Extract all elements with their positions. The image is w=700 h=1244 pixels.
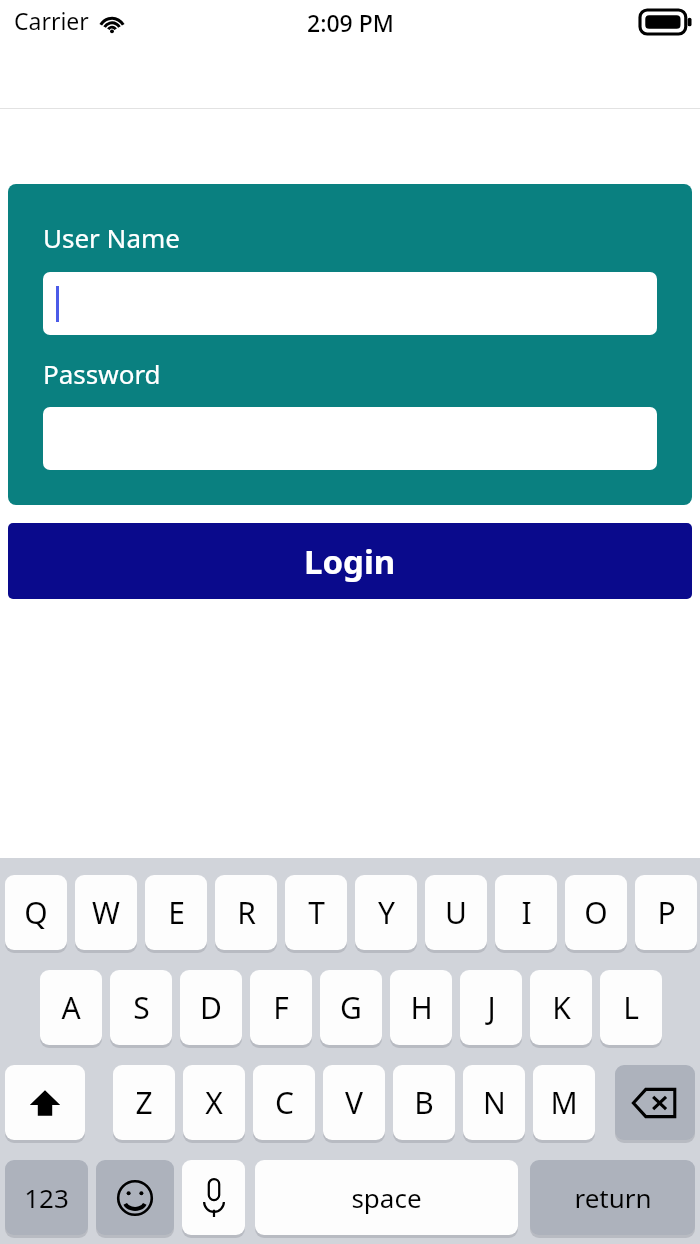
button[interactable]: H — [390, 970, 452, 1045]
button[interactable]: Shift — [5, 1065, 85, 1140]
staticText: J — [487, 987, 496, 1028]
button[interactable]: U — [425, 875, 487, 950]
staticText: Z — [135, 1082, 153, 1123]
staticText: X — [205, 1082, 223, 1123]
staticText: R — [237, 892, 256, 933]
staticText: Q — [24, 892, 48, 933]
button[interactable]: J — [460, 970, 522, 1045]
button[interactable]: O — [565, 875, 627, 950]
staticText: U — [445, 892, 467, 933]
staticText: S — [133, 987, 150, 1028]
staticText: P — [657, 892, 676, 933]
staticText: L — [623, 987, 639, 1028]
staticText: K — [552, 987, 571, 1028]
staticText: 2:09 PM — [307, 7, 394, 38]
button[interactable] — [43, 272, 657, 335]
staticText: C — [275, 1082, 294, 1123]
button[interactable]: R — [215, 875, 277, 950]
button[interactable]: A — [40, 970, 102, 1045]
staticText: A — [61, 987, 81, 1028]
button[interactable]: L — [600, 970, 662, 1045]
staticText: F — [273, 987, 289, 1028]
button[interactable]: G — [320, 970, 382, 1045]
button[interactable]: X — [183, 1065, 245, 1140]
button[interactable]: B — [393, 1065, 455, 1140]
staticText: T — [308, 892, 325, 933]
button[interactable]: K — [530, 970, 592, 1045]
staticText: Carrier — [14, 5, 89, 36]
staticText: O — [584, 892, 608, 933]
staticText: B — [414, 1082, 434, 1123]
staticText: N — [483, 1082, 506, 1123]
button[interactable]: Delete — [615, 1065, 695, 1140]
button[interactable]: Login — [8, 523, 692, 599]
button[interactable]: Emoji — [96, 1160, 174, 1235]
button[interactable]: Dictate — [182, 1160, 245, 1235]
button[interactable]: M — [533, 1065, 595, 1140]
button[interactable]: Z — [113, 1065, 175, 1140]
staticText: W — [92, 892, 120, 933]
button[interactable] — [43, 407, 657, 470]
button[interactable]: return — [530, 1160, 695, 1235]
staticText: Password — [43, 356, 161, 391]
staticText: I — [521, 892, 532, 933]
staticText: Login — [304, 539, 396, 584]
staticText: User Name — [43, 220, 180, 255]
button[interactable]: I — [495, 875, 557, 950]
button[interactable]: F — [250, 970, 312, 1045]
button[interactable]: C — [253, 1065, 315, 1140]
staticText: H — [410, 987, 433, 1028]
staticText: 123 — [24, 1180, 69, 1215]
staticText: V — [345, 1082, 363, 1123]
button[interactable]: 123 — [5, 1160, 88, 1235]
staticText: Y — [378, 892, 395, 933]
staticText: space — [351, 1180, 422, 1215]
button[interactable]: E — [145, 875, 207, 950]
button[interactable]: space — [255, 1160, 518, 1235]
button[interactable]: V — [323, 1065, 385, 1140]
button[interactable]: Y — [355, 875, 417, 950]
button[interactable]: S — [110, 970, 172, 1045]
staticText: return — [574, 1180, 652, 1215]
staticText: M — [550, 1082, 578, 1123]
button[interactable]: Q — [5, 875, 67, 950]
button[interactable]: T — [285, 875, 347, 950]
button[interactable]: W — [75, 875, 137, 950]
staticText: E — [168, 892, 185, 933]
button[interactable]: N — [463, 1065, 525, 1140]
button[interactable]: P — [635, 875, 697, 950]
staticText: D — [200, 987, 222, 1028]
staticText: G — [340, 987, 362, 1028]
button[interactable]: D — [180, 970, 242, 1045]
